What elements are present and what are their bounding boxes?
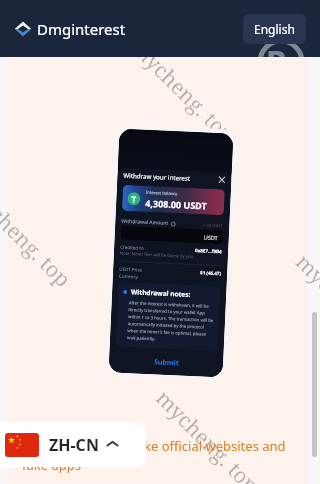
staticText: English	[254, 21, 295, 37]
staticText: Interest balance	[146, 190, 178, 197]
staticText: Withdrawal Amount	[121, 218, 168, 227]
staticText: $1 (46.47)	[200, 269, 221, 276]
staticText: Currency	[119, 273, 139, 280]
staticText: Credited to	[120, 244, 144, 251]
staticText: Please beware of fake official websites …	[22, 437, 292, 474]
staticText: 4,308.00 USDT	[145, 197, 207, 212]
button[interactable]: Close	[218, 176, 225, 183]
staticText: ZH-CN	[49, 434, 99, 456]
staticText: 0x8E7...f8B4	[195, 247, 222, 254]
staticText: Withdrawal notes:	[131, 287, 191, 299]
staticText: R	[266, 40, 287, 57]
button[interactable]: ZH-CN	[0, 422, 146, 467]
staticText: mycheng. top	[289, 248, 320, 364]
button[interactable]: Submit	[109, 353, 223, 372]
staticText: Withdraw your interest	[123, 171, 191, 182]
staticText: After the interest is withdrawn, it will…	[127, 299, 215, 344]
staticText: USDT Price	[119, 266, 143, 273]
staticText: mycheng. top	[125, 34, 241, 150]
staticText: Submit	[154, 357, 179, 368]
staticText: USDT	[204, 233, 218, 241]
staticText: mycheng. top	[0, 178, 77, 294]
staticText: ≈ 50 USDT	[202, 222, 223, 228]
staticText: Note: Miner fees will be borne by you	[120, 251, 194, 260]
staticText: mycheng. top	[149, 384, 265, 484]
staticText: Dmginterest	[37, 19, 126, 39]
staticText: T	[131, 193, 137, 204]
button[interactable]: English	[243, 14, 306, 44]
